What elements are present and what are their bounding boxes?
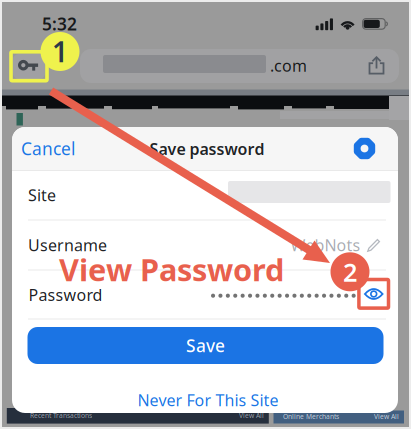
button[interactable]: Passwords xyxy=(0,0,411,429)
staticText: WebNots xyxy=(290,234,360,256)
staticText: Online Merchants xyxy=(283,412,339,421)
button[interactable]: Password settings xyxy=(0,0,411,429)
staticText: View All xyxy=(374,412,399,421)
staticText: View All xyxy=(239,411,264,420)
button[interactable]: Save xyxy=(0,0,411,429)
button[interactable]: Never For This Site xyxy=(0,0,411,429)
staticText: Save xyxy=(186,334,225,357)
staticText: Recent Transactions xyxy=(30,411,92,420)
button[interactable]: Cancel xyxy=(0,0,411,429)
staticText: Never For This Site xyxy=(137,389,278,411)
staticText: 1 xyxy=(52,33,68,70)
button[interactable]: Share xyxy=(0,0,411,429)
staticText: View Password xyxy=(59,249,284,290)
staticText: Cancel xyxy=(21,137,75,160)
staticText: Password xyxy=(28,284,102,305)
staticText: 2 xyxy=(343,255,357,289)
staticText: .com xyxy=(270,55,307,76)
button[interactable]: Edit username xyxy=(0,0,411,429)
button[interactable]: Show password xyxy=(0,0,411,429)
staticText: Site xyxy=(28,184,56,206)
staticText: Save password xyxy=(149,138,264,159)
staticText: 5:32 xyxy=(42,12,77,35)
staticText: Username xyxy=(28,234,107,256)
